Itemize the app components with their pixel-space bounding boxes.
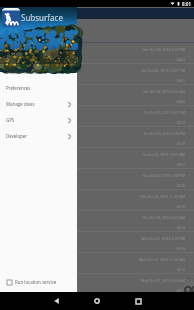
button[interactable]: Wed Oct 21, 2015 2:33 PM (0, 231, 194, 252)
button[interactable]: Home (88, 292, 106, 310)
staticText: Wed Oct 21, 2015 2:33 PM (0, 236, 185, 241)
staticText: Sat Oct 24, 2015 12:37 PM (0, 68, 185, 73)
button[interactable]: Run location service (0, 274, 77, 290)
staticText: #417 (0, 162, 185, 167)
button[interactable]: Thu Oct 22, 2015 9:29 AM (0, 210, 194, 231)
staticText: #419 (0, 120, 185, 125)
button[interactable]: Sat Oct 24, 2015 2:30 PM (0, 42, 194, 63)
staticText: #416 (0, 183, 185, 188)
staticText: Sat Oct 24, 2015 9:34 AM (0, 89, 185, 94)
button[interactable]: Cloud credentials (0, 64, 77, 80)
staticText: Run location service (15, 279, 57, 285)
staticText: #420 (0, 99, 185, 104)
button[interactable]: Sat Oct 24, 2015 9:34 AM (0, 84, 194, 105)
staticText: Thu Oct 22, 2015 1:48 PM (0, 173, 185, 178)
button[interactable]: Thu Oct 22, 2015 11:28 AM (0, 189, 194, 210)
staticText: GPS (6, 117, 15, 123)
button[interactable]: Thu Oct 22, 2015 1:48 PM (0, 168, 194, 189)
button[interactable]: Manage dives (0, 96, 77, 112)
staticText: Subsurface (21, 12, 63, 23)
staticText: Cloud credentials (6, 69, 42, 75)
staticText: #415 (0, 204, 185, 209)
button[interactable]: Wed Oct 21, 2015 9:33 AM (0, 273, 194, 294)
staticText: #414 (0, 225, 185, 230)
staticText: Fri Oct 23, 2015 1:06 PM (0, 131, 185, 136)
staticText: Sat Oct 24, 2015 2:30 PM (0, 47, 185, 52)
staticText: Manage dives (6, 101, 35, 107)
button[interactable]: Preferences (0, 80, 77, 96)
staticText: Preferences (6, 85, 31, 91)
staticText: Developer (6, 133, 28, 139)
staticText: 8:01 (182, 1, 192, 7)
button[interactable]: Add dive (182, 281, 194, 301)
button[interactable]: Recents (129, 292, 147, 310)
button[interactable]: Fri Oct 23, 2015 1:06 PM (0, 126, 194, 147)
button[interactable]: Back (47, 292, 65, 310)
staticText: Thu Oct 22, 2015 11:28 AM (0, 194, 185, 199)
button[interactable]: Wed Oct 21, 2015 11:46 AM (0, 252, 194, 273)
button[interactable]: Developer (0, 128, 77, 144)
button[interactable]: GPS (0, 112, 77, 128)
staticText: Wed Oct 21, 2015 9:33 AM (0, 278, 185, 283)
button[interactable]: Sat Oct 24, 2015 12:37 PM (0, 63, 194, 84)
staticText: Fri Oct 23, 2015 3:41 PM (0, 110, 185, 115)
staticText: Thu Oct 22, 2015 9:29 AM (0, 215, 185, 220)
staticText: #413 (0, 246, 185, 251)
button[interactable]: Fri Oct 23, 2015 13:51 AM (0, 147, 194, 168)
staticText: #422 (0, 57, 185, 62)
staticText: #412 (0, 267, 185, 272)
button[interactable]: Fri Oct 23, 2015 3:41 PM (0, 105, 194, 126)
staticText: #421 (0, 78, 185, 83)
staticText: Fri Oct 23, 2015 13:51 AM (0, 152, 185, 157)
staticText: Wed Oct 21, 2015 11:46 AM (0, 257, 185, 262)
staticText: #418 (0, 141, 185, 146)
staticText: #411 (0, 288, 185, 293)
